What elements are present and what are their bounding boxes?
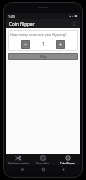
staticText: Dice roller <box>36 162 49 164</box>
button[interactable]: Dice roller <box>30 154 55 165</box>
staticText: How many coins are you flipping? <box>10 32 67 37</box>
staticText: Coin flipper <box>60 162 75 164</box>
button[interactable]: Increase <box>56 40 65 49</box>
button[interactable]: Coin flipper <box>55 154 80 165</box>
button[interactable]: Random number <box>6 154 30 165</box>
staticText: 1:05 <box>8 14 15 19</box>
staticText: Coin flipper <box>9 21 35 27</box>
button[interactable]: Flip <box>8 53 78 60</box>
button[interactable]: Home <box>40 166 47 173</box>
button[interactable]: Decrease <box>21 40 30 49</box>
staticText: Flip <box>40 54 47 59</box>
button[interactable]: Recents <box>19 166 26 173</box>
button[interactable]: Back <box>60 166 67 173</box>
button[interactable]: More options <box>70 20 78 28</box>
staticText: 1 <box>42 41 45 48</box>
staticText: Random number <box>8 162 29 164</box>
